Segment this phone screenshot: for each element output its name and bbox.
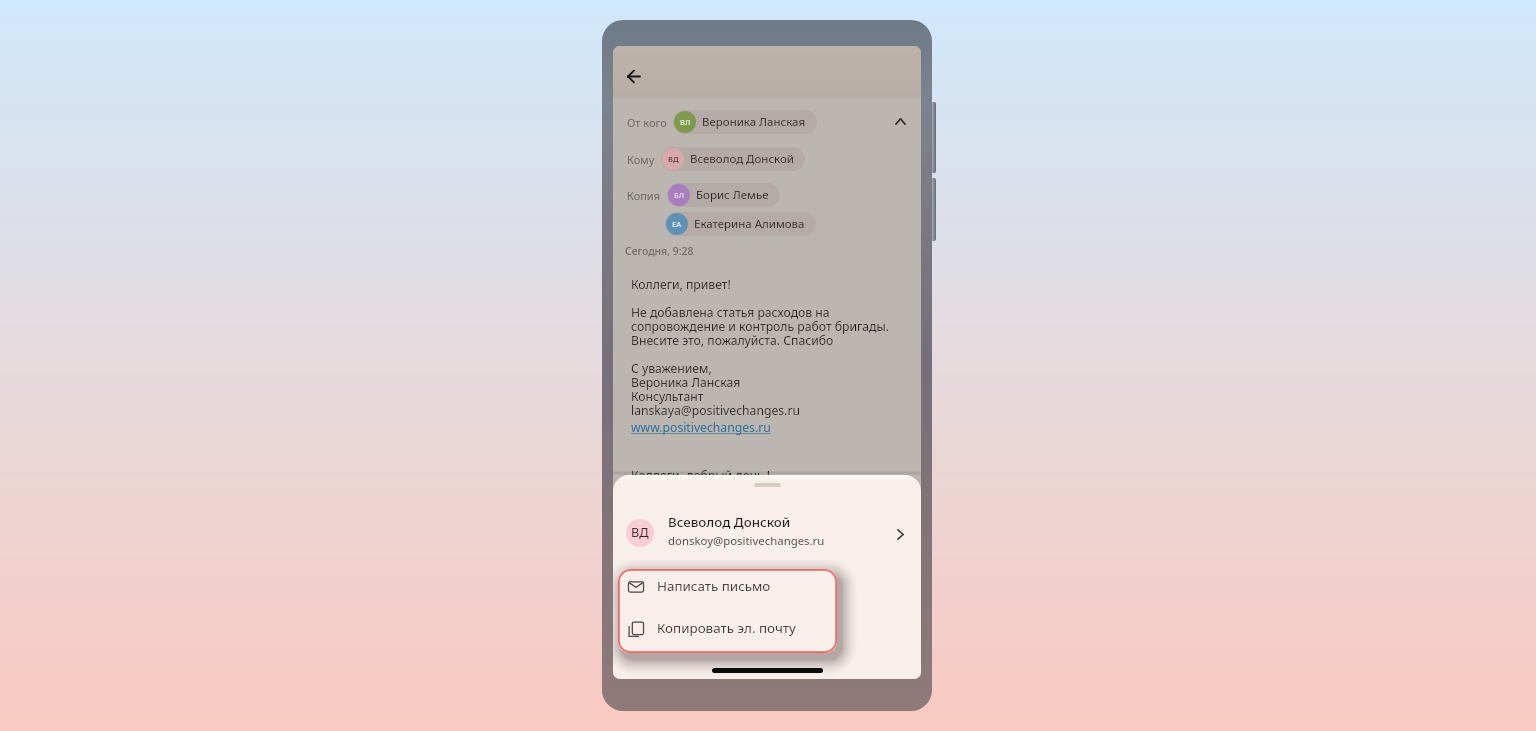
staticText: Екатерина Алимова (694, 216, 805, 232)
staticText: Всеволод Донской (668, 513, 791, 531)
button[interactable]: ЕА (665, 212, 816, 236)
staticText: ЕА (672, 219, 682, 229)
staticText: Кому (627, 152, 655, 167)
button[interactable]: Копировать эл. почту (618, 611, 837, 653)
staticText: donskoy@positivechanges.ru (668, 533, 825, 549)
button[interactable]: Back (616, 58, 652, 94)
staticText: От кого (627, 115, 667, 130)
staticText: БЛ (674, 190, 684, 200)
staticText: ВД (631, 523, 649, 540)
staticText: www.positivechanges.ru (631, 419, 771, 436)
button[interactable]: Написать письмо (618, 569, 837, 611)
staticText: Сегодня, 9:28 (625, 244, 694, 258)
staticText: Всеволод Донской (690, 151, 794, 167)
button[interactable]: БЛ (667, 183, 780, 207)
button[interactable]: ВД (613, 510, 921, 556)
staticText: Написать письмо (657, 577, 771, 595)
staticText: Копия (627, 188, 661, 203)
button[interactable]: Collapse recipients (885, 106, 915, 136)
staticText: ВЛ (680, 117, 691, 127)
staticText: Коллеги, добрый день ! (631, 467, 770, 484)
staticText: Вероника Ланская (702, 114, 806, 130)
button[interactable]: ВД (661, 147, 805, 171)
staticText: Копировать эл. почту (657, 619, 796, 637)
staticText: ВД (668, 154, 679, 164)
staticText: Коллеги, привет! Не добавлена статья рас… (631, 276, 889, 419)
staticText: Борис Лемье (696, 187, 769, 203)
button[interactable]: ВЛ (673, 110, 817, 134)
